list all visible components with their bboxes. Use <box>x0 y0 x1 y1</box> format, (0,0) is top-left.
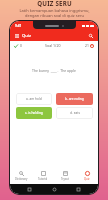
staticText: 0 <box>20 43 22 48</box>
staticText: The bunny ____ . The apple <box>10 68 98 73</box>
button[interactable]: Search <box>87 32 95 40</box>
staticText: c. is holding <box>25 111 43 115</box>
button[interactable]: b. are eating <box>56 93 93 105</box>
staticText: Quiz <box>84 177 90 181</box>
button[interactable]: Recents <box>74 185 83 194</box>
button[interactable]: Tryout <box>54 168 76 184</box>
staticText: b. are eating <box>65 97 84 101</box>
button[interactable]: a. am hold <box>16 93 52 105</box>
staticText: Tryout <box>61 177 69 181</box>
staticText: 9:41 <box>15 24 22 28</box>
staticText: a. am hold <box>26 97 42 101</box>
button[interactable]: d. eats <box>56 107 93 119</box>
button[interactable]: Dictionary <box>10 168 32 184</box>
staticText: Dictionary <box>15 177 28 181</box>
staticText: QUIZ SERU <box>37 0 72 7</box>
button[interactable]: Home <box>50 185 59 194</box>
staticText: Latih kemampuan bahasa inggrismu, dengan… <box>19 8 90 18</box>
staticText: Soal 1/20 <box>45 43 61 48</box>
staticText: d. eats <box>70 111 80 115</box>
staticText: 21 <box>85 43 89 48</box>
button[interactable]: c. is holding <box>16 107 52 119</box>
button[interactable]: Back <box>25 185 34 194</box>
button[interactable]: Tutorial <box>32 168 54 184</box>
button[interactable]: Quiz <box>76 168 98 184</box>
button[interactable]: Menu <box>13 32 21 40</box>
staticText: Quiz <box>22 33 32 39</box>
staticText: Tutorial <box>38 177 48 181</box>
